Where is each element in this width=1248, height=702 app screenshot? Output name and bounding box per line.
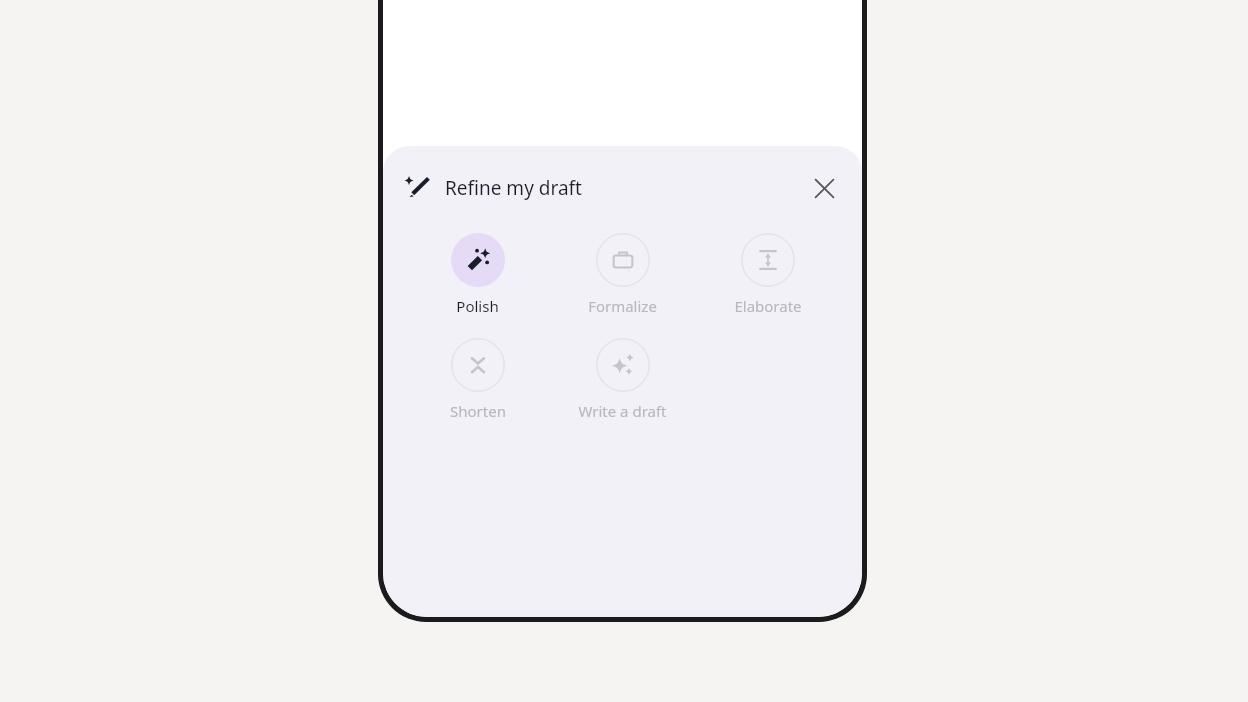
button[interactable]: Write a draft	[550, 335, 695, 424]
staticText: Elaborate	[734, 296, 802, 316]
button[interactable]: Formalize	[550, 230, 695, 319]
staticText: Refine my draft	[445, 175, 582, 201]
staticText: Write a draft	[578, 401, 667, 421]
staticText: Formalize	[588, 296, 657, 316]
button[interactable]: Elaborate	[695, 230, 840, 319]
staticText: Shorten	[450, 401, 506, 421]
button[interactable]: Shorten	[405, 335, 550, 424]
button[interactable]: Polish	[405, 230, 550, 319]
button[interactable]: Close	[802, 166, 846, 210]
staticText: Polish	[456, 296, 499, 316]
